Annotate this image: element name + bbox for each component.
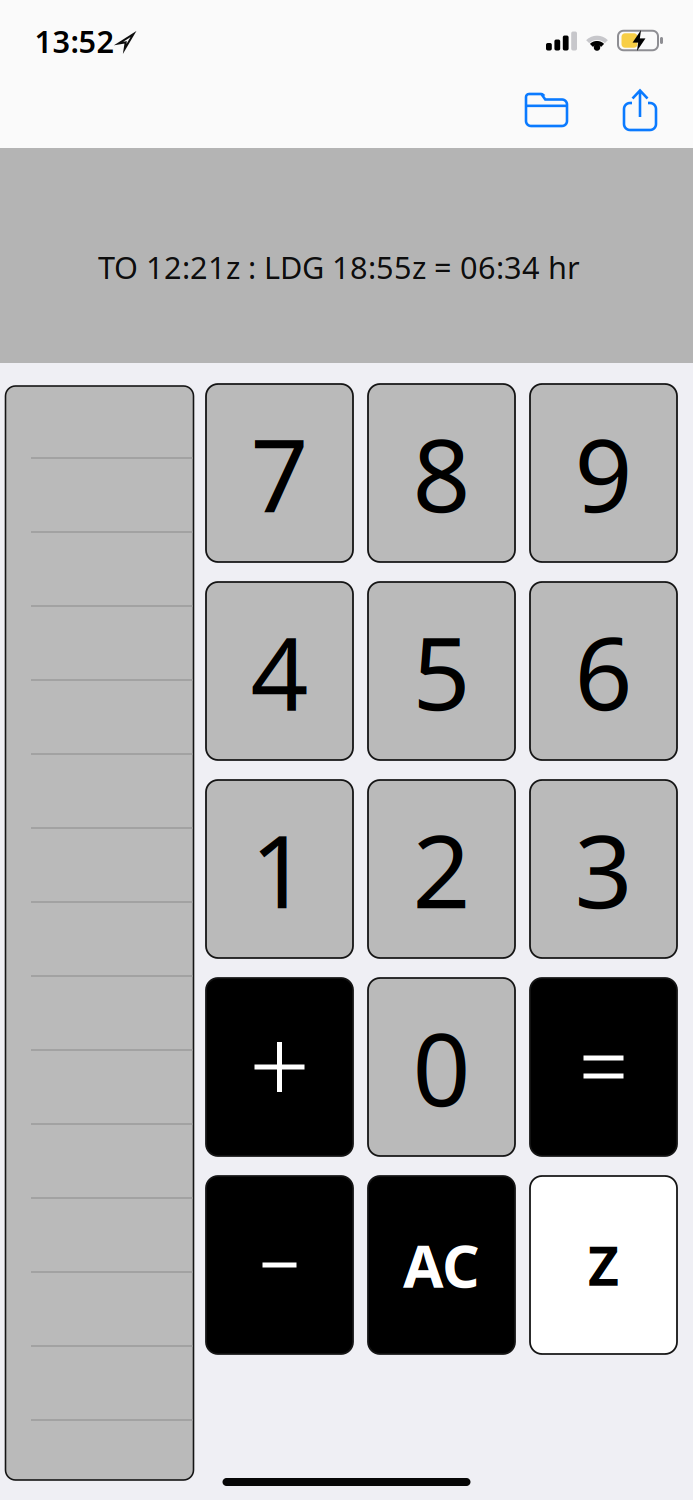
staticText: 5	[412, 604, 470, 738]
staticText: 6	[574, 604, 632, 738]
button[interactable]: Add	[206, 978, 353, 1156]
button[interactable]: Subtract	[206, 1176, 353, 1354]
button[interactable]: 4	[206, 582, 353, 760]
button[interactable]: AC	[368, 1176, 515, 1354]
staticText: AC	[403, 1226, 480, 1304]
button[interactable]: Open file	[520, 88, 573, 132]
staticText: Z	[588, 1230, 619, 1300]
staticText: 2	[412, 802, 470, 936]
staticText: 9	[574, 406, 632, 540]
button[interactable]: 0	[368, 978, 515, 1156]
button[interactable]: 6	[530, 582, 677, 760]
button[interactable]: 5	[368, 582, 515, 760]
button[interactable]: Z	[530, 1176, 677, 1354]
staticText: 4	[250, 604, 308, 738]
staticText: TO 12:21z : LDG 18:55z = 06:34 hr	[98, 247, 580, 287]
staticText: 13:52	[34, 21, 114, 61]
button[interactable]: 1	[206, 780, 353, 958]
button[interactable]: 7	[206, 384, 353, 562]
button[interactable]: Equals	[530, 978, 677, 1156]
staticText: 8	[412, 406, 470, 540]
button[interactable]: 9	[530, 384, 677, 562]
button[interactable]: Share	[618, 84, 662, 136]
staticText: 1	[250, 802, 308, 936]
button[interactable]: 2	[368, 780, 515, 958]
button[interactable]: 8	[368, 384, 515, 562]
staticText: 7	[250, 406, 308, 540]
staticText: 3	[574, 802, 632, 936]
staticText: 0	[412, 1000, 470, 1134]
button[interactable]: 3	[530, 780, 677, 958]
